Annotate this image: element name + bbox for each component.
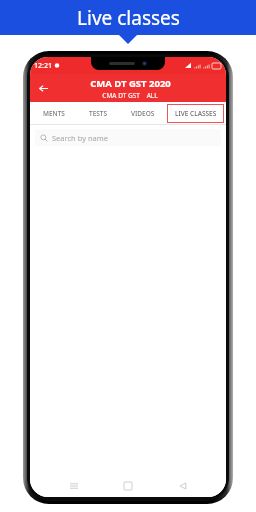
button[interactable]: MENTS: [30, 102, 77, 125]
staticText: CMA DT GST 2020: [90, 77, 171, 90]
button[interactable]: Back: [172, 475, 194, 497]
button[interactable]: Home: [117, 475, 139, 497]
button[interactable]: VIDEOS: [120, 102, 165, 125]
staticText: Live classes: [77, 5, 180, 31]
button[interactable]: TESTS: [77, 102, 120, 125]
staticText: LIVE CLASSES: [175, 109, 217, 118]
staticText: TESTS: [89, 109, 108, 118]
staticText: Search by name: [52, 133, 109, 143]
button[interactable]: Search by name: [35, 129, 221, 146]
staticText: VIDEOS: [131, 109, 155, 118]
button[interactable]: LIVE CLASSES: [167, 104, 224, 123]
staticText: CMA DT GST ALL: [102, 91, 158, 100]
staticText: 12:21: [34, 61, 52, 71]
staticText: MENTS: [43, 109, 65, 118]
button[interactable]: Back: [30, 75, 56, 101]
button[interactable]: Recents: [63, 475, 85, 497]
